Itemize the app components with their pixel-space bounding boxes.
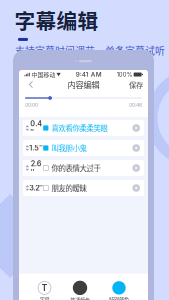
staticText: 2.6″ <box>31 159 42 177</box>
staticText: 普通颜色 <box>70 296 90 300</box>
staticText: 叫我胆小鬼 <box>51 143 86 153</box>
staticText: 0.4″ <box>30 119 42 137</box>
button[interactable]: T <box>38 281 51 300</box>
staticText: 字幕 <box>39 296 49 300</box>
staticText: 内容编辑 <box>67 78 99 90</box>
button[interactable]: 普通颜色 <box>70 281 90 300</box>
staticText: 字幕编辑 <box>14 5 98 35</box>
staticText: 9:41 AM <box>76 71 102 78</box>
staticText: 1.5″ <box>29 144 43 152</box>
button[interactable]: 1.5″ <box>23 140 144 156</box>
staticText: 中国移动 <box>31 70 55 79</box>
staticText: 朋友的暧昧 <box>51 183 86 193</box>
staticText: T <box>41 283 47 293</box>
button[interactable]: 保存 <box>128 79 144 90</box>
staticText: 00:00 <box>25 102 38 108</box>
staticText: 支持字幕时间调节、单条字幕试听 <box>15 43 165 58</box>
button[interactable]: 2.6″ <box>23 160 144 176</box>
button[interactable]: 3.2″ <box>23 180 144 196</box>
staticText: 特别颜色 <box>109 296 129 300</box>
staticText: 00:46 <box>129 102 142 108</box>
button[interactable]: 返回 <box>23 79 39 90</box>
button[interactable]: 0.4″ <box>23 120 144 136</box>
staticText: 喜欢看你柔柔笑眼 <box>51 123 107 133</box>
staticText: 保存 <box>129 79 143 90</box>
staticText: 3.2″ <box>29 184 43 192</box>
staticText: 你的表情大过于 <box>51 163 100 173</box>
button[interactable]: 特别颜色 <box>109 281 129 300</box>
staticText: 100% <box>117 71 133 78</box>
